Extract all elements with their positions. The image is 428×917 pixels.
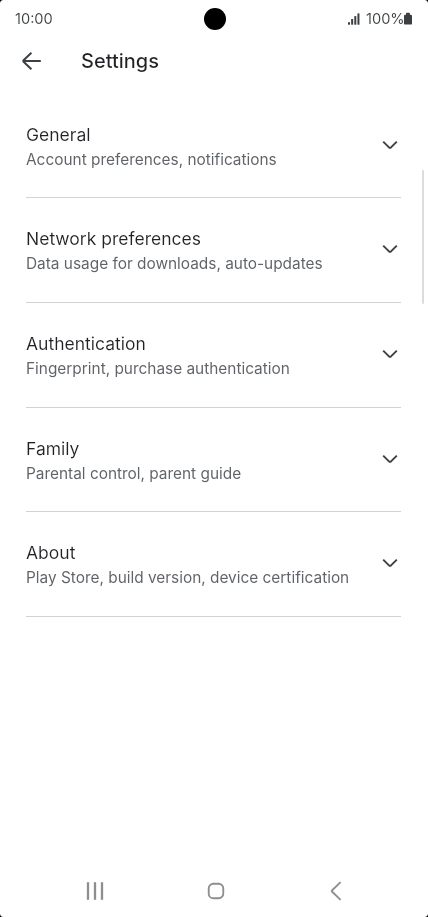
button[interactable]: Back	[308, 863, 364, 917]
button[interactable]: Home	[188, 863, 244, 917]
staticText: Family	[26, 438, 80, 459]
staticText: About	[26, 542, 76, 563]
staticText: Fingerprint, purchase authentication	[26, 359, 290, 378]
button[interactable]: General	[0, 93, 428, 198]
staticText: General	[26, 124, 91, 145]
button[interactable]: Authentication	[0, 302, 428, 407]
staticText: 100%	[366, 10, 405, 28]
button[interactable]: Network preferences	[0, 197, 428, 302]
staticText: Settings	[81, 49, 159, 73]
staticText: Account preferences, notifications	[26, 150, 277, 169]
button[interactable]: Recent apps	[67, 863, 123, 917]
button[interactable]: Back	[8, 37, 56, 85]
staticText: Authentication	[26, 333, 146, 354]
button[interactable]: About	[0, 511, 428, 616]
staticText: Network preferences	[26, 228, 201, 249]
staticText: 10:00	[15, 10, 53, 28]
staticText: Play Store, build version, device certif…	[26, 568, 350, 587]
button[interactable]: Family	[0, 407, 428, 512]
staticText: Data usage for downloads, auto-updates	[26, 254, 323, 273]
staticText: Parental control, parent guide	[26, 464, 242, 483]
